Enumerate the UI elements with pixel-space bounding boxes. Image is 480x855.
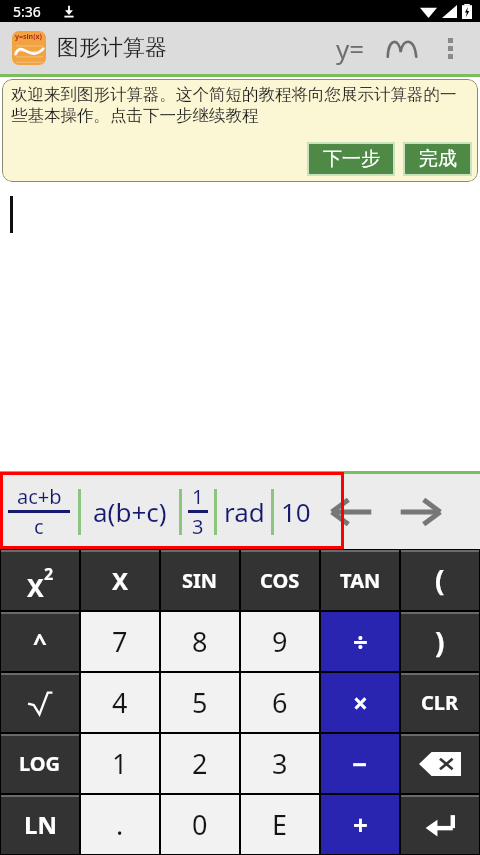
- button[interactable]: Enter: [401, 795, 479, 854]
- staticText: 图形计算器: [57, 34, 167, 62]
- staticText: TAN: [340, 567, 381, 594]
- button[interactable]: 9: [241, 612, 319, 671]
- button[interactable]: X: [81, 550, 159, 610]
- button[interactable]: 10: [274, 474, 318, 549]
- staticText: COS: [260, 567, 300, 594]
- button[interactable]: ÷: [321, 612, 399, 671]
- button[interactable]: 1: [81, 734, 159, 793]
- button[interactable]: App icon: [12, 31, 46, 65]
- staticText: 3: [192, 513, 204, 540]
- button[interactable]: E: [241, 795, 319, 854]
- staticText: a(b+c): [93, 494, 167, 529]
- button[interactable]: 7: [81, 612, 159, 671]
- staticText: ac+b: [17, 483, 62, 510]
- staticText: 9: [272, 623, 288, 660]
- staticText: 下一步: [323, 147, 380, 171]
- button[interactable]: 5: [161, 673, 239, 732]
- button[interactable]: rad: [217, 474, 271, 549]
- staticText: 2: [192, 745, 208, 782]
- button[interactable]: Backspace: [401, 734, 479, 793]
- staticText: CLR: [421, 689, 459, 716]
- button[interactable]: TAN: [321, 550, 399, 610]
- button[interactable]: COS: [241, 550, 319, 610]
- staticText: X: [27, 570, 44, 604]
- staticText: +: [353, 807, 368, 842]
- staticText: ×: [353, 685, 368, 720]
- button[interactable]: Previous: [318, 474, 386, 549]
- staticText: y=: [336, 31, 365, 66]
- staticText: 1: [112, 745, 128, 782]
- button[interactable]: (: [401, 550, 479, 610]
- staticText: ^: [33, 625, 47, 658]
- staticText: (: [435, 561, 445, 599]
- staticText: 8: [192, 623, 208, 660]
- button[interactable]: ): [401, 612, 479, 671]
- staticText: 2: [44, 563, 54, 585]
- staticText: .: [116, 806, 124, 843]
- staticText: c: [34, 513, 44, 540]
- button[interactable]: 2: [161, 734, 239, 793]
- staticText: 1: [192, 483, 204, 510]
- button[interactable]: 完成: [403, 142, 472, 176]
- staticText: rad: [224, 494, 265, 529]
- staticText: −: [352, 746, 368, 781]
- button[interactable]: 1: [182, 474, 214, 549]
- staticText: 完成: [419, 147, 457, 171]
- staticText: SIN: [182, 567, 218, 594]
- staticText: ÷: [353, 624, 368, 659]
- button[interactable]: +: [321, 795, 399, 854]
- button[interactable]: Next: [386, 474, 454, 549]
- button[interactable]: 0: [161, 795, 239, 854]
- staticText: 欢迎来到图形计算器。这个简短的教程将向您展示计算器的一些基本操作。点击下一步继续…: [11, 84, 467, 126]
- button[interactable]: −: [321, 734, 399, 793]
- button[interactable]: .: [81, 795, 159, 854]
- button[interactable]: ×: [321, 673, 399, 732]
- button[interactable]: ^: [1, 612, 79, 671]
- button[interactable]: 6: [241, 673, 319, 732]
- staticText: 5:36: [13, 2, 41, 21]
- button[interactable]: ac+b: [0, 474, 78, 549]
- button[interactable]: LOG: [1, 734, 79, 793]
- staticText: E: [272, 806, 288, 843]
- button[interactable]: SIN: [161, 550, 239, 610]
- button[interactable]: 8: [161, 612, 239, 671]
- staticText: 7: [112, 623, 128, 660]
- staticText: LN: [24, 808, 57, 841]
- button[interactable]: a(b+c): [81, 474, 179, 549]
- button[interactable]: Graph: [376, 22, 428, 74]
- staticText: LOG: [19, 750, 61, 777]
- staticText: ): [435, 623, 445, 661]
- button[interactable]: CLR: [401, 673, 479, 732]
- button[interactable]: 3: [241, 734, 319, 793]
- staticText: y=sin(x): [15, 32, 42, 42]
- staticText: 6: [272, 684, 288, 721]
- button[interactable]: Functions y equals: [324, 22, 376, 74]
- button[interactable]: Square root: [1, 673, 79, 732]
- staticText: 5: [192, 684, 208, 721]
- staticText: 3: [272, 745, 288, 782]
- staticText: 10: [281, 494, 311, 529]
- staticText: X: [112, 564, 129, 597]
- button[interactable]: 下一步: [307, 142, 395, 176]
- button[interactable]: More options: [428, 22, 472, 74]
- button[interactable]: 4: [81, 673, 159, 732]
- button[interactable]: X: [1, 550, 79, 610]
- staticText: 0: [192, 806, 208, 843]
- button[interactable]: LN: [1, 795, 79, 854]
- staticText: 4: [112, 684, 128, 721]
